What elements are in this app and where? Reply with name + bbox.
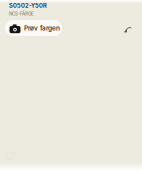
staticText: Prøv fargen <box>24 24 60 32</box>
button[interactable]: Se fargen i rommet <box>117 20 137 40</box>
staticText: NCS-FÄRGE <box>9 11 34 17</box>
staticText: S0502-Y50R <box>9 2 47 9</box>
button[interactable]: Prøv fargen <box>5 20 62 36</box>
button[interactable]: Favoritt <box>1 147 19 165</box>
